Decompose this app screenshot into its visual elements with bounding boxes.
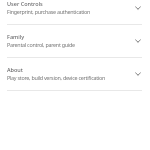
staticText: About xyxy=(7,66,23,73)
staticText: Parental control, parent guide xyxy=(7,41,75,48)
other: Expand User Controls xyxy=(132,2,144,14)
button[interactable]: Family xyxy=(0,25,150,58)
button[interactable]: About xyxy=(0,58,150,91)
staticText: Fingerprint, purchase authentication xyxy=(7,8,91,15)
other: Expand About xyxy=(132,68,144,80)
staticText: User Controls xyxy=(7,0,43,7)
staticText: Play store, build version, device certif… xyxy=(7,74,106,81)
other: Expand Family xyxy=(132,35,144,47)
button[interactable]: User Controls xyxy=(0,0,150,25)
staticText: Family xyxy=(7,33,25,40)
